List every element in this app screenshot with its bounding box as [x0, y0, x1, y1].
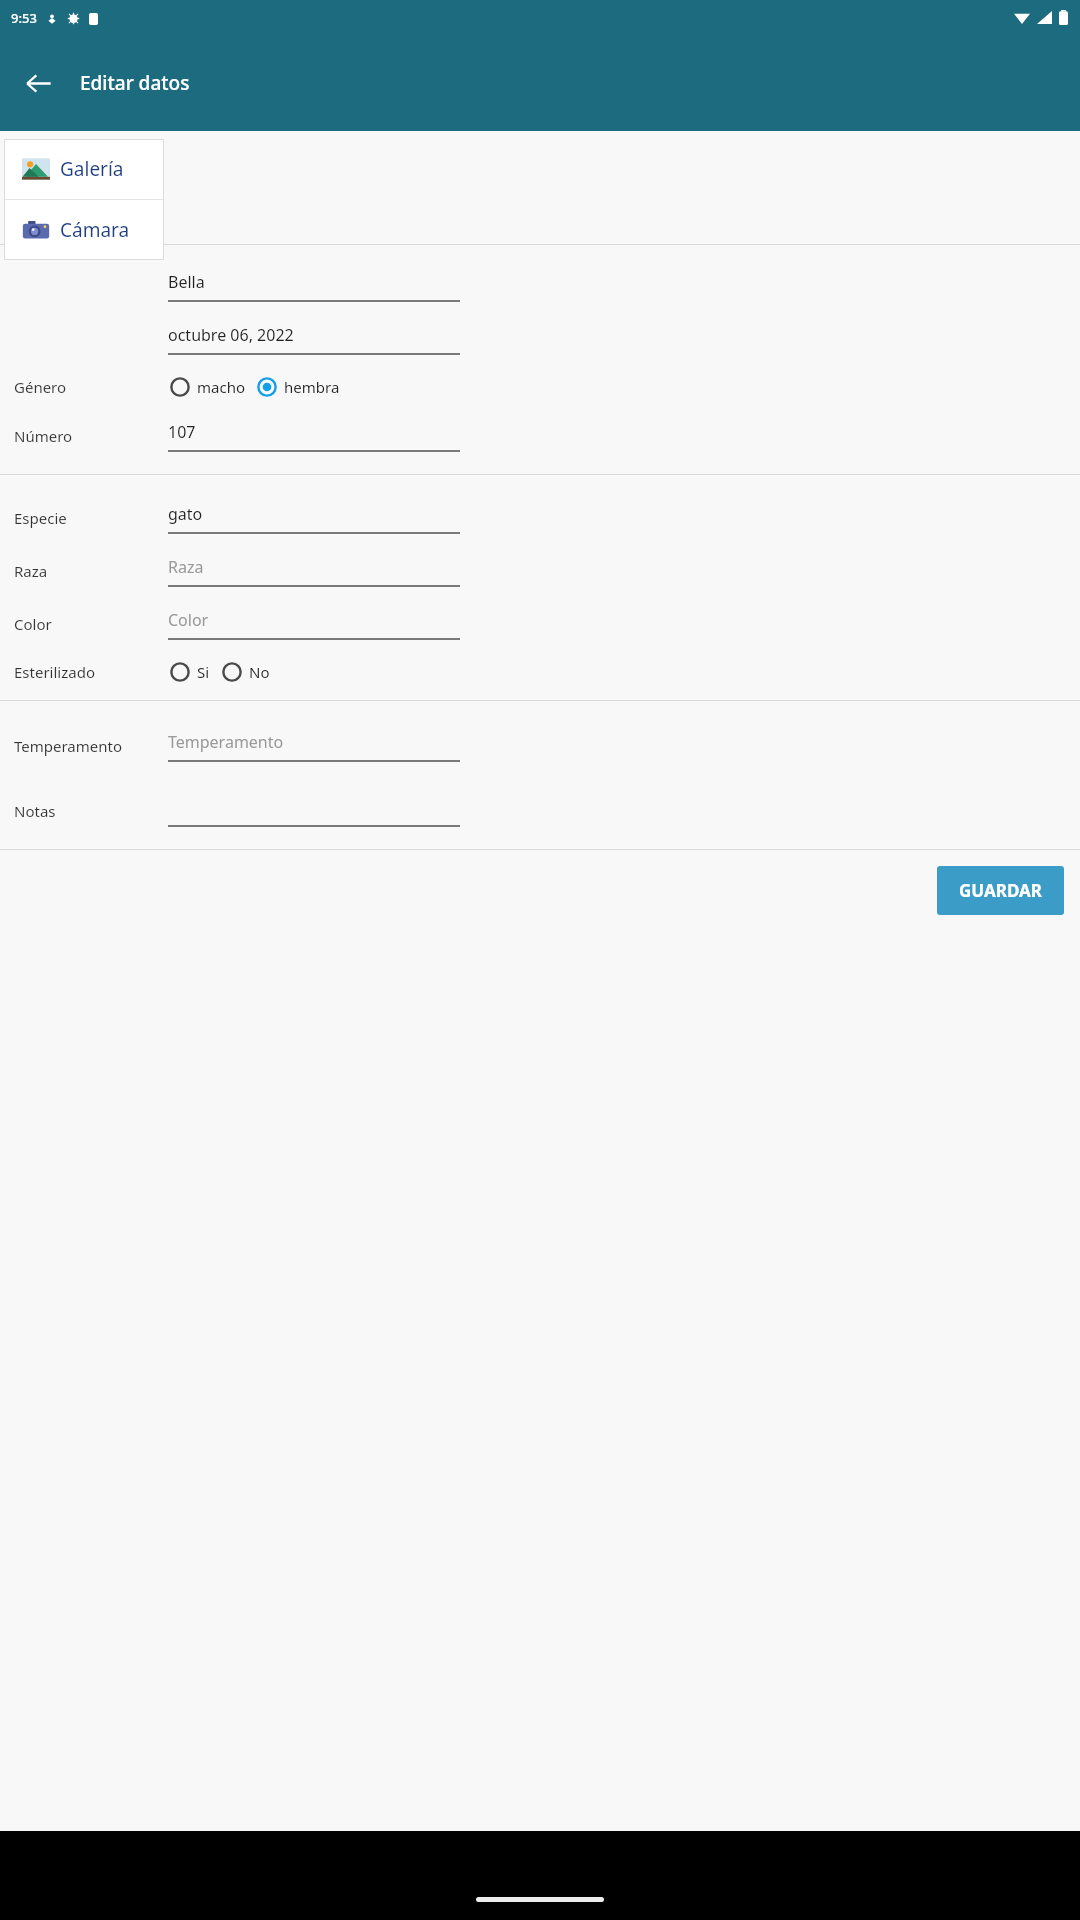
button[interactable]: Back — [10, 55, 66, 111]
staticText: Bella — [168, 271, 205, 293]
staticText: Número — [14, 426, 73, 446]
button[interactable]: Notas — [0, 788, 1080, 827]
staticText: Cámara — [60, 217, 130, 243]
button[interactable]: Foto de la mascota — [14, 145, 100, 231]
staticText: GUARDAR — [959, 879, 1042, 902]
staticText: Esterilizado — [14, 662, 95, 682]
button[interactable]: Color — [0, 601, 1080, 640]
button[interactable]: Temperamento — [0, 723, 1080, 762]
staticText: 107 — [168, 421, 196, 443]
staticText: octubre 06, 2022 — [168, 324, 294, 346]
staticText: Temperamento — [14, 736, 123, 756]
button[interactable]: Cámara — [4, 200, 164, 260]
staticText: Color — [14, 614, 52, 634]
button[interactable]: No — [220, 660, 280, 684]
staticText: Género — [14, 377, 67, 397]
staticText: hembra — [284, 377, 340, 397]
staticText: Editar datos — [80, 70, 190, 96]
button[interactable]: Galería — [4, 139, 164, 199]
button[interactable]: macho — [168, 375, 255, 399]
staticText: Raza — [14, 561, 48, 581]
staticText: Galería — [60, 156, 124, 182]
button[interactable]: Especie — [0, 495, 1080, 534]
button[interactable]: Si — [168, 660, 220, 684]
staticText: Temperamento — [168, 731, 284, 753]
staticText: gato — [168, 503, 203, 525]
button[interactable]: octubre 06, 2022 — [0, 316, 1080, 355]
button[interactable]: Bella — [0, 263, 1080, 302]
button[interactable]: GUARDAR — [937, 866, 1064, 915]
staticText: macho — [197, 377, 245, 397]
staticText: Notas — [14, 801, 56, 821]
staticText: Si — [197, 662, 210, 682]
button[interactable]: Raza — [0, 548, 1080, 587]
staticText: Especie — [14, 508, 67, 528]
staticText: Color — [168, 609, 209, 631]
staticText: Raza — [168, 556, 204, 578]
staticText: No — [249, 662, 270, 682]
button[interactable]: Número — [0, 413, 1080, 452]
staticText: 9:53 — [11, 9, 37, 27]
button[interactable]: hembra — [255, 375, 350, 399]
